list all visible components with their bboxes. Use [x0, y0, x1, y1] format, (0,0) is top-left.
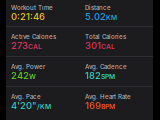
staticText: Avg. Cadence	[85, 63, 127, 70]
staticText: 5.02KM	[85, 11, 117, 22]
button[interactable]: Avg. Pace	[11, 93, 81, 111]
button[interactable]: Avg. Power	[11, 63, 81, 81]
button[interactable]: Total Calories	[85, 33, 149, 51]
button[interactable]: Active Calories	[11, 33, 81, 51]
staticText: Avg. Pace	[11, 93, 41, 100]
staticText: 242W	[11, 70, 36, 81]
staticText: Workout Time	[11, 4, 53, 11]
staticText: Total Calories	[85, 33, 126, 40]
staticText: 0:21:46	[11, 11, 45, 22]
staticText: Avg. Power	[11, 63, 45, 70]
staticText: 182SPM	[85, 70, 115, 81]
button[interactable]: Avg. Heart Rate	[85, 93, 149, 111]
staticText: 4'20"/KM	[11, 100, 51, 111]
staticText: 169BPM	[85, 100, 115, 111]
staticText: Distance	[85, 4, 111, 11]
staticText: 301CAL	[85, 40, 115, 51]
button[interactable]: Distance	[85, 4, 149, 22]
button[interactable]: Workout Time	[11, 4, 81, 22]
staticText: 273CAL	[11, 40, 42, 51]
staticText: Avg. Heart Rate	[85, 93, 131, 100]
staticText: Active Calories	[11, 33, 56, 40]
button[interactable]: Avg. Cadence	[85, 63, 149, 81]
